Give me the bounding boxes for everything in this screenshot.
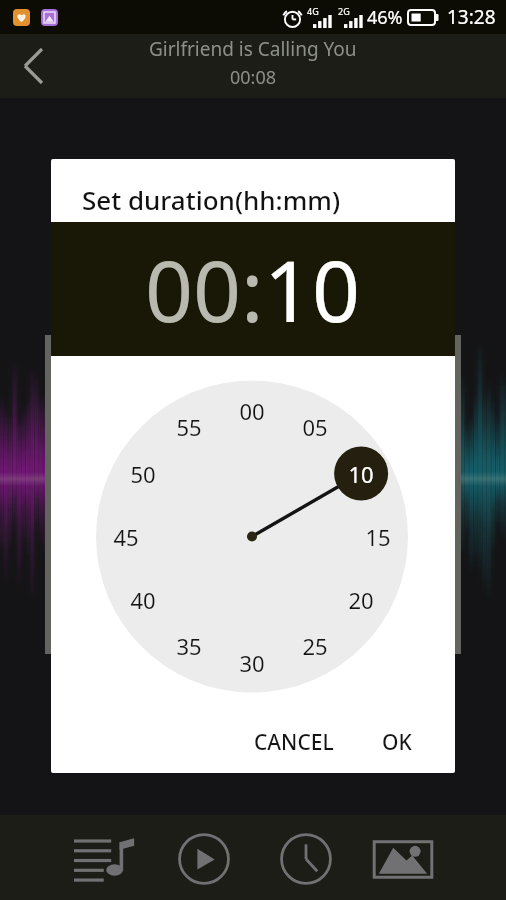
button[interactable]: OK <box>370 719 424 766</box>
staticText: 40 <box>130 585 156 615</box>
staticText: CANCEL <box>254 728 334 757</box>
staticText: 10 <box>264 232 361 346</box>
staticText: 45 <box>113 522 139 552</box>
button[interactable]: Back <box>0 34 64 98</box>
staticText: 00: <box>145 232 264 346</box>
staticText: 20 <box>348 585 374 615</box>
button[interactable]: Play <box>162 815 246 900</box>
staticText: OK <box>382 728 412 757</box>
staticText: 46% <box>367 5 403 30</box>
button[interactable]: CANCEL <box>242 719 346 766</box>
staticText: 15 <box>365 522 391 552</box>
staticText: 30 <box>239 648 265 678</box>
staticText: 2G <box>338 5 350 17</box>
staticText: Set duration(hh:mm) <box>82 182 341 217</box>
staticText: 00 <box>239 396 265 426</box>
staticText: 13:28 <box>447 4 496 30</box>
staticText: 4G <box>307 5 319 17</box>
staticText: 05 <box>302 412 328 442</box>
button[interactable]: Playlist <box>63 815 147 900</box>
staticText: 25 <box>302 631 328 661</box>
staticText: Girlfriend is Calling You <box>149 36 357 62</box>
button[interactable]: Gallery <box>361 815 445 900</box>
staticText: 10 <box>348 459 374 489</box>
button[interactable]: Timer <box>264 815 348 900</box>
staticText: 00:08 <box>230 65 277 90</box>
staticText: 55 <box>176 412 202 442</box>
staticText: 50 <box>130 459 156 489</box>
staticText: 35 <box>176 631 202 661</box>
